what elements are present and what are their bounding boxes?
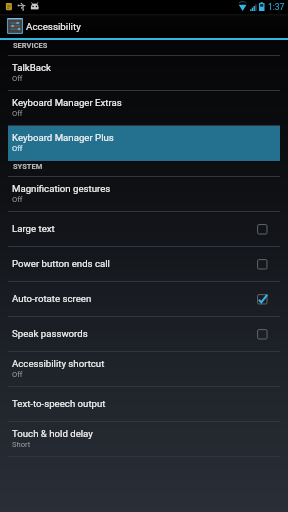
other: Accessibility settings	[7, 18, 23, 34]
button[interactable]: Accessibility shortcut	[0, 352, 288, 387]
staticText: Off	[12, 109, 23, 118]
staticText: Touch & hold delay	[12, 428, 93, 439]
staticText: Accessibility shortcut	[12, 358, 105, 369]
staticText: Power button ends call	[12, 258, 110, 269]
staticText: TalkBack	[12, 62, 51, 73]
button[interactable]: Auto-rotate screen	[0, 282, 288, 317]
button[interactable]: Speak passwords	[0, 317, 288, 352]
button[interactable]: TalkBack	[0, 56, 288, 91]
button[interactable]: Large text	[0, 212, 288, 247]
button[interactable]: Power button ends call	[0, 247, 288, 282]
staticText: SYSTEM	[13, 162, 43, 171]
staticText: Off	[12, 144, 23, 153]
staticText: Keyboard Manager Plus	[12, 132, 114, 143]
button[interactable]: Touch & hold delay	[0, 422, 288, 457]
button[interactable]: Text-to-speech output	[0, 387, 288, 422]
staticText: Keyboard Manager Extras	[12, 97, 122, 108]
staticText: Magnification gestures	[12, 183, 111, 194]
staticText: Accessibility	[26, 21, 81, 32]
staticText: Auto-rotate screen	[12, 293, 92, 304]
button[interactable]: Accessibility settings	[0, 14, 288, 38]
staticText: Text-to-speech output	[12, 398, 106, 409]
staticText: Short	[12, 440, 31, 449]
staticText: 1:37	[268, 2, 285, 12]
staticText: SERVICES	[13, 41, 48, 50]
button[interactable]: Magnification gestures	[0, 177, 288, 212]
button[interactable]	[8, 126, 280, 161]
staticText: Off	[12, 74, 23, 83]
button[interactable]: Keyboard Manager Extras	[0, 91, 288, 126]
staticText: Off	[12, 370, 23, 379]
staticText: Large text	[12, 223, 55, 234]
staticText: Speak passwords	[12, 328, 88, 339]
staticText: Off	[12, 195, 23, 204]
